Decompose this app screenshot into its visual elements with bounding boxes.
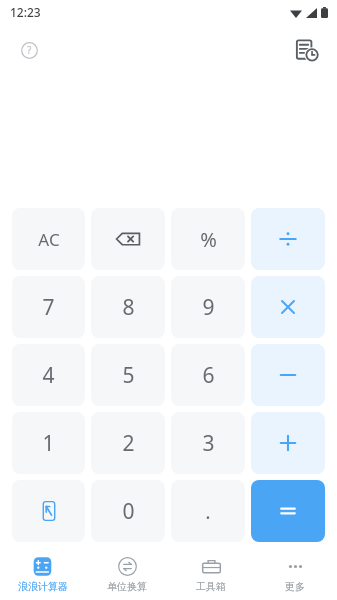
staticText: 4 xyxy=(42,361,55,390)
button[interactable]: 4 xyxy=(12,344,85,406)
button[interactable]: 0 xyxy=(91,480,165,542)
staticText: 1 xyxy=(42,429,55,458)
staticText: 12:23 xyxy=(10,4,41,20)
button[interactable]: 更多 xyxy=(253,548,337,600)
button[interactable]: 工具箱 xyxy=(169,548,253,600)
button[interactable]: 单位换算 xyxy=(85,548,169,600)
staticText: 浪浪计算器 xyxy=(18,580,68,593)
button[interactable]: 5 xyxy=(91,344,165,406)
button[interactable]: Backspace xyxy=(91,208,165,270)
staticText: 5 xyxy=(122,361,135,390)
button[interactable]: 6 xyxy=(171,344,245,406)
staticText: 8 xyxy=(122,293,135,322)
button[interactable]: 浪浪计算器 xyxy=(0,548,85,600)
button[interactable]: 1 xyxy=(12,412,85,474)
staticText: 9 xyxy=(202,293,215,322)
staticText: . xyxy=(205,498,211,525)
staticText: 0 xyxy=(122,497,135,526)
button[interactable]: History xyxy=(289,32,325,68)
staticText: 单位换算 xyxy=(107,580,147,593)
button[interactable]: 3 xyxy=(171,412,245,474)
button[interactable]: 2 xyxy=(91,412,165,474)
staticText: 更多 xyxy=(285,580,305,593)
staticText: ? xyxy=(27,43,32,57)
button[interactable]: % xyxy=(171,208,245,270)
staticText: 7 xyxy=(42,293,55,322)
button[interactable]: 8 xyxy=(91,276,165,338)
staticText: 6 xyxy=(202,361,215,390)
button[interactable]: Multiply xyxy=(251,276,325,338)
button[interactable]: Help xyxy=(12,33,46,67)
button[interactable]: Equals xyxy=(251,480,325,542)
button[interactable]: Plus xyxy=(251,412,325,474)
button[interactable]: 9 xyxy=(171,276,245,338)
staticText: 工具箱 xyxy=(196,580,226,593)
staticText: AC xyxy=(38,228,60,251)
button[interactable]: . xyxy=(171,480,245,542)
button[interactable]: 7 xyxy=(12,276,85,338)
staticText: 2 xyxy=(122,429,135,458)
staticText: 3 xyxy=(202,429,215,458)
staticText: % xyxy=(200,226,217,253)
button[interactable]: Minus xyxy=(251,344,325,406)
button[interactable]: Expand xyxy=(12,480,85,542)
button[interactable]: Divide xyxy=(251,208,325,270)
button[interactable]: AC xyxy=(12,208,85,270)
